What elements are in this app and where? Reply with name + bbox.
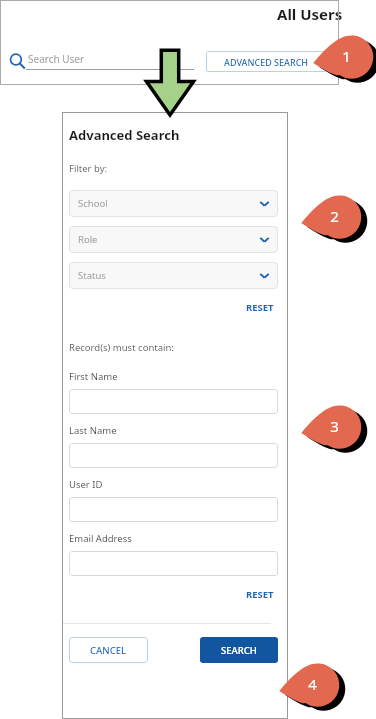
staticText: Record(s) must contain: — [69, 341, 174, 354]
staticText: Last Name — [69, 424, 117, 437]
staticText: RESET — [246, 588, 274, 601]
button[interactable]: RESET — [242, 586, 278, 603]
button[interactable]: First Name — [69, 389, 278, 414]
staticText: ADVANCED SEARCH — [224, 56, 309, 68]
button[interactable]: CANCEL — [69, 637, 148, 663]
staticText: CANCEL — [90, 644, 127, 657]
staticText: Search User — [28, 52, 85, 66]
staticText: Advanced Search — [69, 126, 180, 144]
staticText: First Name — [69, 370, 118, 383]
staticText: All Users — [277, 4, 343, 24]
other: Search — [8, 52, 26, 70]
button[interactable]: ADVANCED SEARCH — [206, 51, 327, 72]
staticText: 1 — [342, 46, 351, 66]
staticText: SEARCH — [221, 644, 257, 657]
button[interactable]: Search — [6, 48, 196, 74]
staticText: Email Address — [69, 532, 132, 545]
button[interactable]: Email Address — [69, 551, 278, 576]
button[interactable]: Last Name — [69, 443, 278, 468]
staticText: Filter by: — [69, 162, 108, 175]
button[interactable]: Status — [69, 262, 278, 289]
staticText: User ID — [69, 478, 103, 491]
button[interactable]: RESET — [242, 299, 278, 316]
button[interactable]: SEARCH — [200, 637, 278, 663]
button[interactable]: Role — [69, 226, 278, 253]
staticText: 4 — [308, 674, 317, 694]
button[interactable]: School — [69, 190, 278, 217]
staticText: RESET — [246, 301, 274, 314]
staticText: 2 — [330, 206, 339, 226]
staticText: 3 — [330, 416, 339, 436]
staticText: School — [78, 197, 108, 210]
button[interactable]: User ID — [69, 497, 278, 522]
staticText: Role — [78, 233, 98, 246]
staticText: Status — [78, 269, 106, 282]
